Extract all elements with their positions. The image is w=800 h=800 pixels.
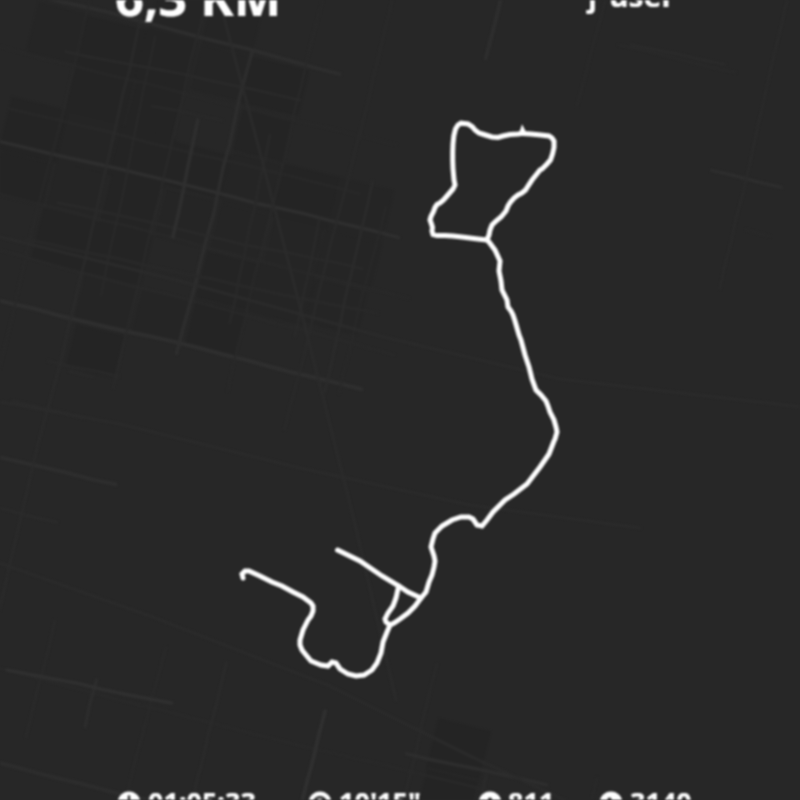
staticText: j [588,0,597,16]
staticText: user [609,0,675,16]
button[interactable]: Duration 01:05:33 [116,788,276,800]
staticText: 01:05:33 [148,783,256,800]
button[interactable]: Average pace 10'15" per km [307,788,427,800]
staticText: 10'15" [339,783,421,800]
staticText: 6,3 KM [115,0,282,31]
button[interactable]: Elevation 3140 [598,788,698,800]
staticText: 811 [508,783,555,800]
button[interactable]: Calories 811 [477,788,567,800]
staticText: 3140 [630,783,692,800]
